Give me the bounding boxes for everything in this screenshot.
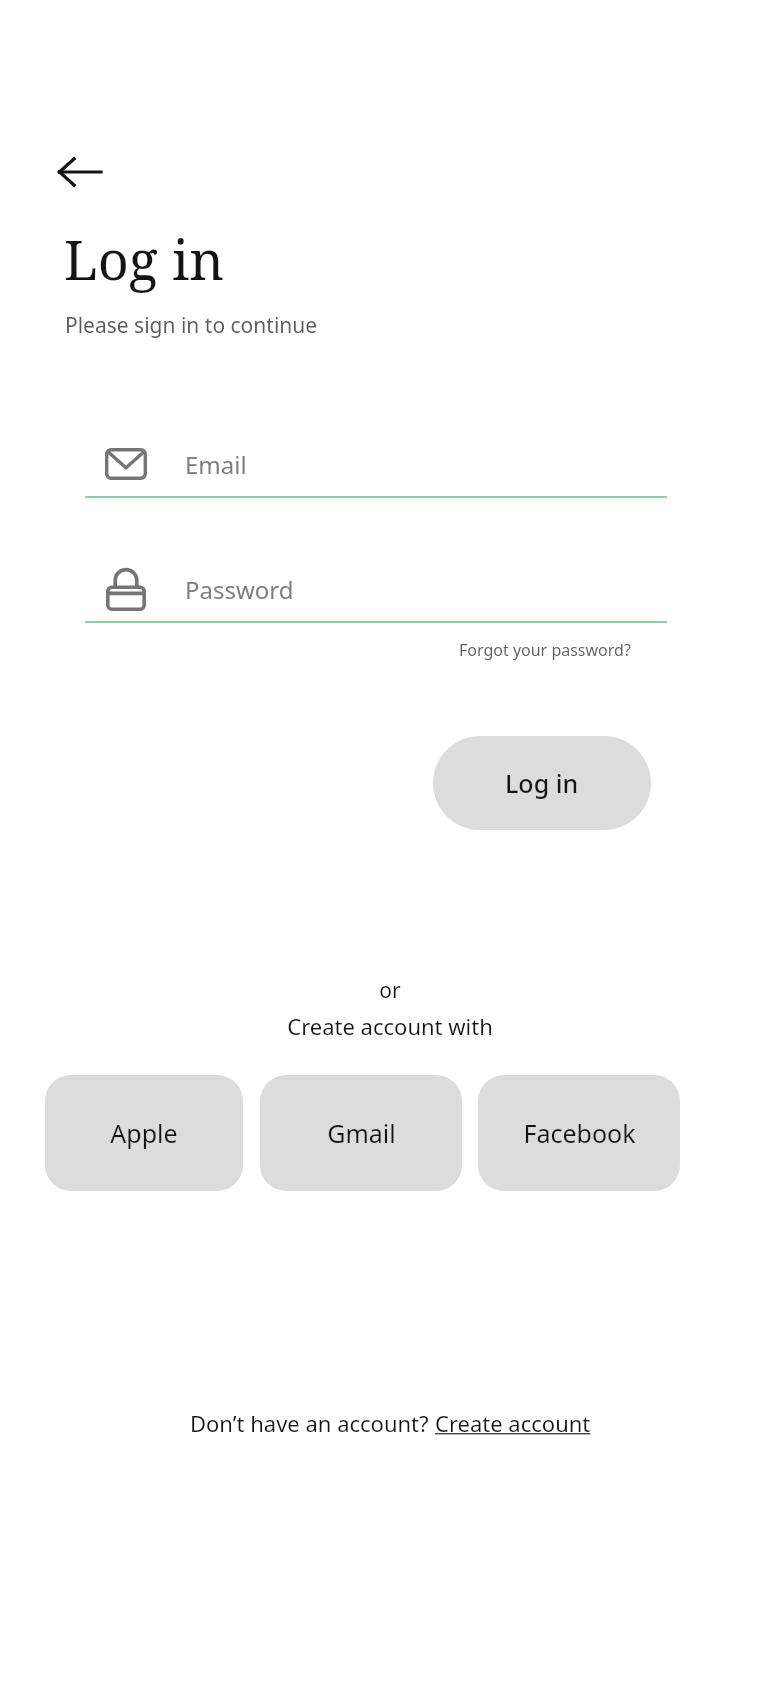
button[interactable]: Back	[52, 144, 108, 200]
staticText: Facebook	[523, 1116, 636, 1150]
button[interactable]: Create account	[435, 1408, 591, 1438]
button[interactable]: Facebook	[478, 1075, 680, 1191]
button[interactable]: Apple	[45, 1075, 243, 1191]
button[interactable]: Log in	[433, 736, 651, 830]
staticText: Log in	[505, 766, 579, 800]
staticText: Email	[185, 448, 247, 481]
staticText: Forgot your password?	[459, 639, 631, 661]
button[interactable]: Email	[85, 430, 667, 498]
staticText: Password	[185, 573, 294, 606]
staticText: Create account with	[287, 1011, 493, 1041]
button[interactable]: Gmail	[260, 1075, 462, 1191]
staticText: Gmail	[327, 1116, 396, 1150]
staticText: or	[379, 976, 401, 1005]
staticText: Please sign in to continue	[65, 311, 318, 340]
staticText: Don’t have an account?	[190, 1408, 435, 1438]
staticText: Log in	[64, 222, 225, 296]
staticText: Apple	[110, 1116, 178, 1150]
button[interactable]: Password	[85, 555, 667, 623]
button[interactable]: Forgot your password?	[455, 636, 635, 664]
staticText: Create account	[435, 1408, 591, 1438]
